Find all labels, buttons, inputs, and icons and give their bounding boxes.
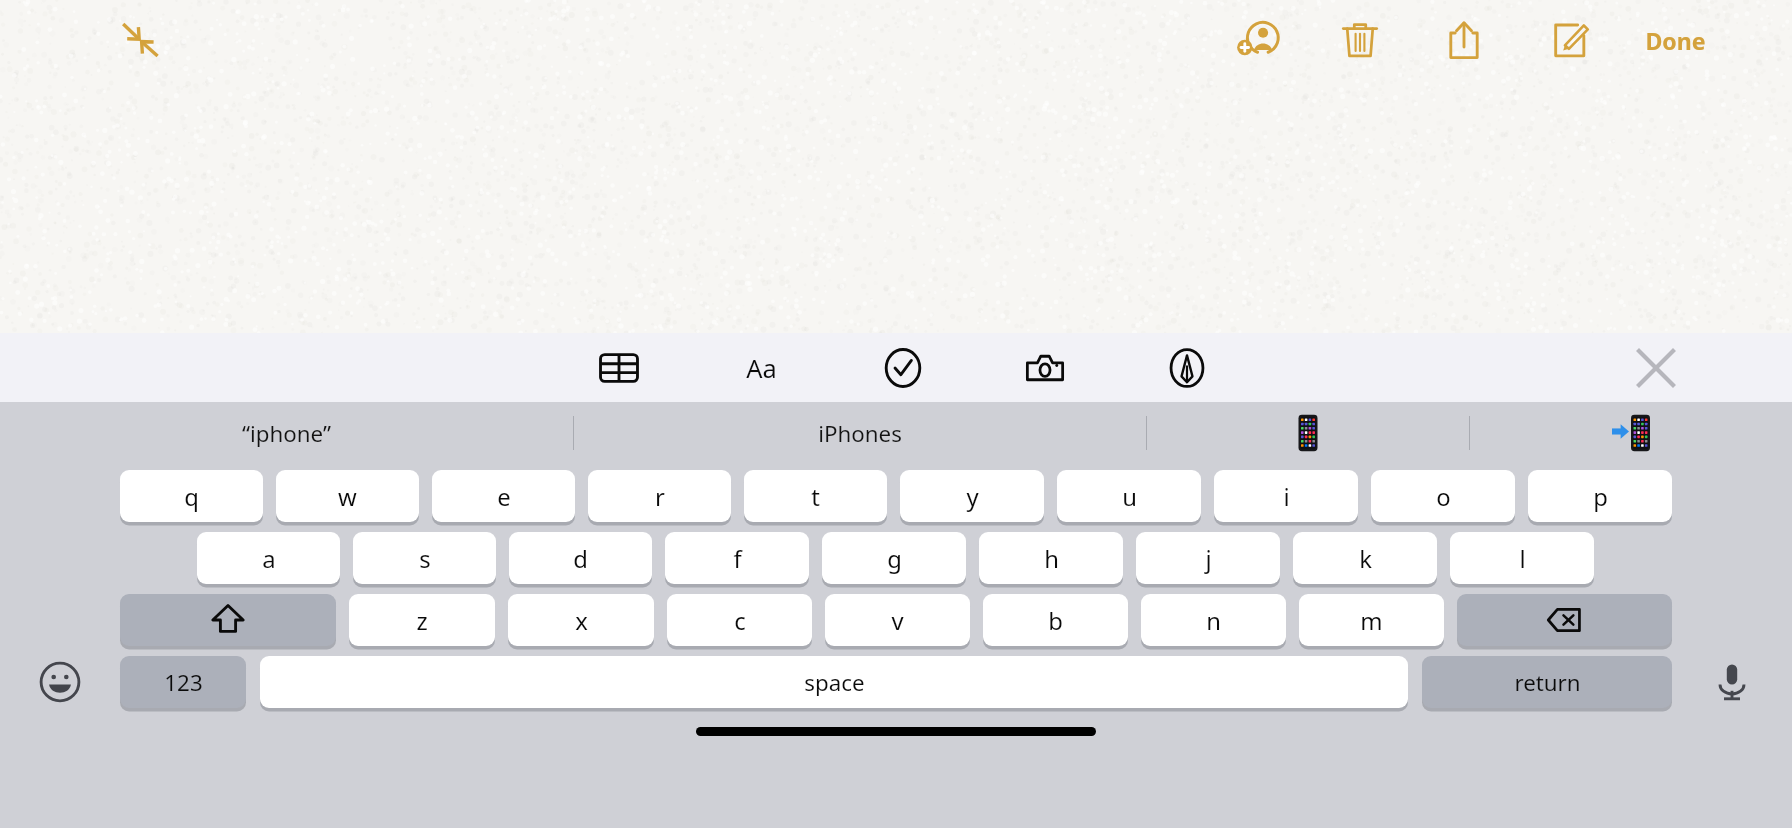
staticText: e	[497, 480, 511, 513]
staticText: Aa	[746, 351, 777, 386]
button[interactable]: b	[983, 594, 1128, 646]
button[interactable]: space	[260, 656, 1408, 708]
staticText: z	[416, 604, 428, 637]
button[interactable]: o	[1371, 470, 1515, 522]
button[interactable]: Camera	[1016, 339, 1074, 397]
staticText: o	[1436, 480, 1451, 513]
button[interactable]: y	[900, 470, 1044, 522]
staticText: k	[1359, 542, 1372, 575]
staticText: return	[1514, 667, 1581, 697]
staticText: d	[573, 542, 588, 575]
button[interactable]: Add people	[1229, 11, 1287, 69]
button[interactable]: k	[1293, 532, 1437, 584]
button[interactable]: l	[1450, 532, 1594, 584]
staticText: y	[966, 480, 979, 513]
staticText: t	[811, 480, 820, 513]
staticText: q	[184, 480, 199, 513]
staticText: g	[887, 542, 902, 575]
button[interactable]: Emoji	[0, 656, 120, 708]
button[interactable]: iPhones	[574, 402, 1146, 464]
button[interactable]: d	[509, 532, 652, 584]
button[interactable]: Dictation	[1672, 656, 1792, 708]
button[interactable]: 123	[120, 656, 246, 708]
button[interactable]: Backspace	[1457, 594, 1672, 646]
button[interactable]: r	[588, 470, 731, 522]
button[interactable]: Checklist	[874, 339, 932, 397]
button[interactable]: g	[822, 532, 966, 584]
button[interactable]: t	[744, 470, 887, 522]
button[interactable]: j	[1136, 532, 1280, 584]
staticText: h	[1044, 542, 1059, 575]
staticText: w	[338, 480, 357, 513]
button[interactable]: s	[353, 532, 496, 584]
staticText: b	[1048, 604, 1063, 637]
button[interactable]: “iphone”	[0, 402, 573, 464]
button[interactable]: Delete	[1331, 11, 1389, 69]
staticText: “iphone”	[242, 418, 331, 448]
staticText: 123	[164, 667, 203, 697]
button[interactable]: f	[665, 532, 809, 584]
button[interactable]: m	[1299, 594, 1444, 646]
staticText: u	[1122, 480, 1137, 513]
button[interactable]: Done	[1639, 17, 1712, 64]
button[interactable]: Share	[1435, 11, 1493, 69]
button[interactable]: u	[1057, 470, 1201, 522]
staticText: v	[891, 604, 904, 637]
button[interactable]: x	[508, 594, 654, 646]
button[interactable]: i	[1214, 470, 1358, 522]
button[interactable]: c	[667, 594, 812, 646]
button[interactable]: Shift	[120, 594, 336, 646]
staticText: f	[733, 542, 742, 575]
button[interactable]: a	[197, 532, 340, 584]
button[interactable]: Table	[590, 339, 648, 397]
staticText: a	[262, 542, 276, 575]
staticText: j	[1205, 542, 1212, 575]
button[interactable]: z	[349, 594, 495, 646]
button[interactable]: Phone emoji	[1147, 402, 1469, 464]
button[interactable]: w	[276, 470, 419, 522]
staticText: x	[575, 604, 588, 637]
button[interactable]: p	[1528, 470, 1672, 522]
button[interactable]: Collapse	[108, 8, 172, 72]
staticText: iPhones	[818, 418, 902, 448]
staticText: s	[419, 542, 431, 575]
button[interactable]: e	[432, 470, 575, 522]
staticText: r	[655, 480, 665, 513]
button[interactable]: h	[979, 532, 1123, 584]
staticText: p	[1593, 480, 1608, 513]
button[interactable]: Compose	[1539, 11, 1597, 69]
button[interactable]: v	[825, 594, 970, 646]
staticText: l	[1519, 542, 1526, 575]
button[interactable]: Phone with arrow emoji	[1470, 402, 1792, 464]
button[interactable]: return	[1422, 656, 1672, 708]
staticText: c	[734, 604, 746, 637]
staticText: m	[1360, 604, 1383, 637]
button[interactable]: Markup	[1158, 339, 1216, 397]
button[interactable]: n	[1141, 594, 1286, 646]
staticText: i	[1283, 480, 1290, 513]
staticText: space	[804, 667, 865, 697]
button[interactable]: Close	[1628, 340, 1684, 396]
button[interactable]: q	[120, 470, 263, 522]
staticText: n	[1206, 604, 1221, 637]
button[interactable]: Aa	[732, 339, 790, 397]
staticText: Done	[1645, 25, 1706, 56]
